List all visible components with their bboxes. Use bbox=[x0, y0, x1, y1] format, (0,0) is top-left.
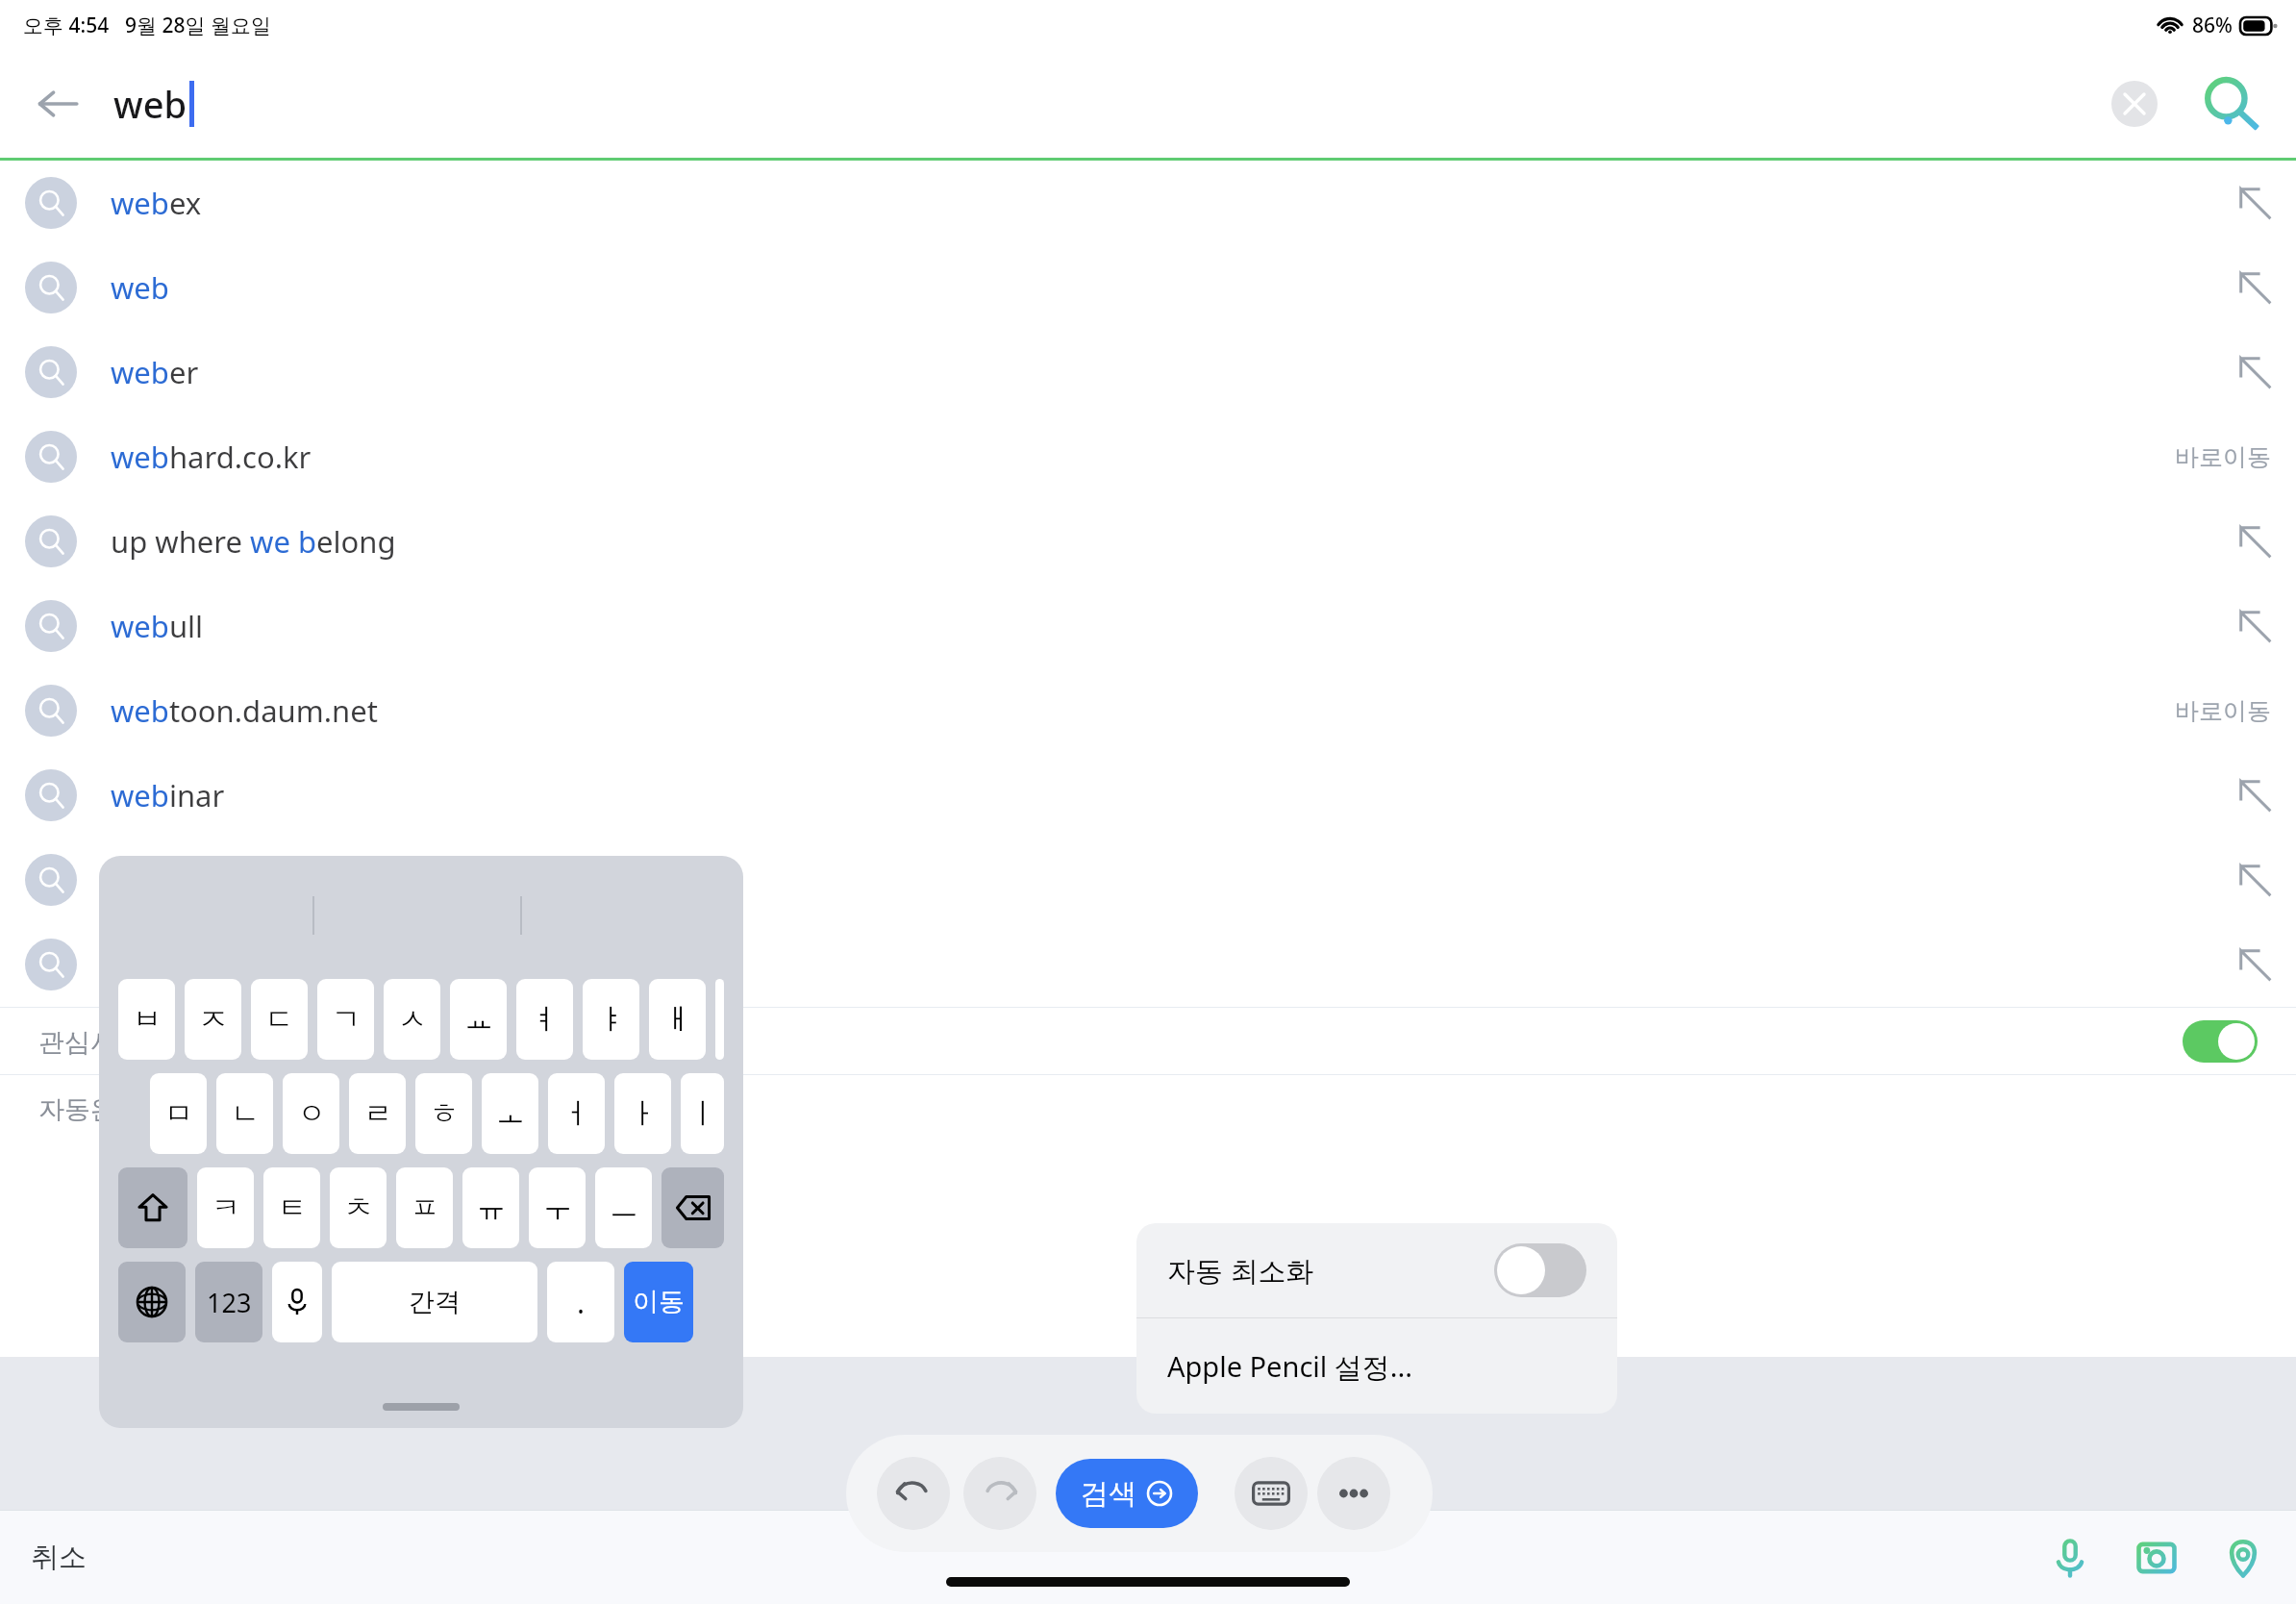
button[interactable]: 검색 bbox=[1056, 1459, 1198, 1528]
button[interactable]: ㅠ bbox=[462, 1167, 519, 1248]
button[interactable]: weber bbox=[0, 330, 2296, 414]
button[interactable]: ㅎ bbox=[415, 1073, 472, 1154]
staticText: ㅑ bbox=[597, 1001, 626, 1038]
button[interactable]: 간격 bbox=[332, 1262, 537, 1342]
staticText: 123 bbox=[207, 1285, 252, 1320]
button[interactable]: Undo bbox=[877, 1457, 950, 1530]
button[interactable]: ㅑ bbox=[583, 979, 639, 1060]
staticText: ㅛ bbox=[464, 1001, 493, 1038]
staticText: ㅐ bbox=[663, 1001, 692, 1038]
staticText: ㅓ bbox=[562, 1095, 591, 1132]
button[interactable]: Back bbox=[25, 71, 90, 137]
staticText: 오후 4:54 bbox=[23, 12, 110, 39]
staticText: 9월 28일 월요일 bbox=[125, 12, 271, 39]
button[interactable]: ㅌ bbox=[263, 1167, 320, 1248]
button[interactable]: 취소 bbox=[10, 1526, 108, 1589]
other: Next keyboard bbox=[136, 1286, 168, 1318]
button[interactable]: 자동 최소화 bbox=[1136, 1223, 1617, 1317]
button[interactable]: Redo bbox=[963, 1457, 1036, 1530]
staticText: webex bbox=[111, 183, 2238, 223]
button[interactable]: ㅐ bbox=[649, 979, 706, 1060]
staticText: web bbox=[113, 79, 187, 129]
button[interactable]: ㅈ bbox=[185, 979, 241, 1060]
staticText: webtoon.daum.net bbox=[111, 690, 2175, 731]
button[interactable]: ㅗ bbox=[482, 1073, 538, 1154]
button[interactable]: Dictate bbox=[272, 1262, 322, 1342]
staticText: Apple Pencil 설정... bbox=[1167, 1347, 1413, 1386]
button[interactable]: webtoon.daum.net bbox=[0, 668, 2296, 753]
button[interactable]: ㅋ bbox=[197, 1167, 254, 1248]
button[interactable]: 관심사를 반영한 자동완성 bbox=[0, 1008, 2296, 1074]
staticText: ㅅ bbox=[398, 1001, 427, 1038]
button[interactable]: 123 bbox=[195, 1262, 262, 1342]
staticText: ㄷ bbox=[265, 1001, 294, 1038]
button[interactable]: ㄱ bbox=[317, 979, 374, 1060]
button[interactable]: ㄷ bbox=[251, 979, 308, 1060]
button[interactable]: webull bbox=[0, 584, 2296, 668]
button[interactable]: Search bbox=[2194, 67, 2267, 140]
staticText: ㅡ bbox=[610, 1190, 638, 1226]
button[interactable]: . bbox=[547, 1262, 614, 1342]
button[interactable]: ㅇ bbox=[283, 1073, 339, 1154]
staticText: weber bbox=[111, 352, 2238, 392]
button[interactable]: Next keyboard bbox=[118, 1262, 186, 1342]
staticText: 취소 bbox=[31, 1540, 87, 1575]
button[interactable]: Place bbox=[2213, 1528, 2273, 1588]
button[interactable]: ㄹ bbox=[349, 1073, 406, 1154]
button[interactable]: ㅔ bbox=[715, 979, 724, 1060]
staticText: ㅎ bbox=[430, 1095, 459, 1132]
button[interactable]: More options bbox=[1317, 1457, 1390, 1530]
button[interactable]: Apple Pencil 설정... bbox=[1136, 1318, 1617, 1414]
button[interactable]: Clear bbox=[2108, 77, 2161, 131]
button[interactable]: ㅏ bbox=[614, 1073, 671, 1154]
staticText: 바로이동 bbox=[2175, 442, 2271, 472]
other: Shift bbox=[137, 1192, 168, 1223]
button[interactable]: webinar bbox=[0, 753, 2296, 838]
staticText: ㄱ bbox=[332, 1001, 361, 1038]
staticText: 간격 bbox=[409, 1286, 461, 1318]
button[interactable]: ㅜ bbox=[529, 1167, 586, 1248]
button[interactable]: Lens bbox=[2127, 1528, 2186, 1588]
button[interactable]: ㅕ bbox=[516, 979, 573, 1060]
staticText: 관심사를 반영한 자동완성 bbox=[38, 1023, 2183, 1059]
staticText: 이동 bbox=[633, 1286, 685, 1318]
staticText: ㄹ bbox=[363, 1095, 392, 1132]
button[interactable]: Keyboard bbox=[1235, 1457, 1308, 1530]
staticText: ㅍ bbox=[411, 1190, 439, 1226]
button[interactable]: ㅍ bbox=[396, 1167, 453, 1248]
button[interactable]: ㅓ bbox=[548, 1073, 605, 1154]
staticText: ㅜ bbox=[543, 1190, 572, 1226]
button[interactable]: Backspace bbox=[661, 1167, 724, 1248]
button[interactable]: Cisco webex bbox=[0, 922, 2296, 1007]
staticText: ㅈ bbox=[199, 1001, 228, 1038]
staticText: webcam bbox=[111, 860, 2238, 900]
button[interactable]: ㅣ bbox=[681, 1073, 724, 1154]
button[interactable]: ㄴ bbox=[216, 1073, 273, 1154]
button[interactable]: Voice search bbox=[2040, 1528, 2100, 1588]
staticText: ㅇ bbox=[297, 1095, 326, 1132]
button[interactable]: web bbox=[0, 245, 2296, 330]
staticText: ㅣ bbox=[688, 1095, 717, 1132]
staticText: ㄴ bbox=[231, 1095, 260, 1132]
staticText: ㅊ bbox=[344, 1190, 373, 1226]
button[interactable]: 이동 bbox=[624, 1262, 693, 1342]
staticText: web bbox=[111, 267, 2238, 308]
staticText: 자동완성 끄기 bbox=[38, 1090, 2258, 1126]
button[interactable]: Shift bbox=[118, 1167, 187, 1248]
button[interactable]: webcam bbox=[0, 838, 2296, 922]
button[interactable]: ㅛ bbox=[450, 979, 507, 1060]
button[interactable]: ㅁ bbox=[150, 1073, 207, 1154]
staticText: . bbox=[577, 1283, 586, 1322]
staticText: 검색 bbox=[1081, 1476, 1136, 1512]
button[interactable]: ㅡ bbox=[595, 1167, 652, 1248]
button[interactable]: ㅂ bbox=[118, 979, 175, 1060]
staticText: ㅁ bbox=[164, 1095, 193, 1132]
button[interactable]: ㅅ bbox=[384, 979, 440, 1060]
button[interactable]: webex bbox=[0, 161, 2296, 245]
staticText: 86% bbox=[2192, 12, 2233, 39]
button[interactable]: webhard.co.kr bbox=[0, 414, 2296, 499]
button[interactable]: up where we belong bbox=[0, 499, 2296, 584]
button[interactable]: ㅊ bbox=[330, 1167, 387, 1248]
staticText: ㅗ bbox=[496, 1095, 525, 1132]
button[interactable]: 자동완성 끄기 bbox=[0, 1075, 2296, 1141]
